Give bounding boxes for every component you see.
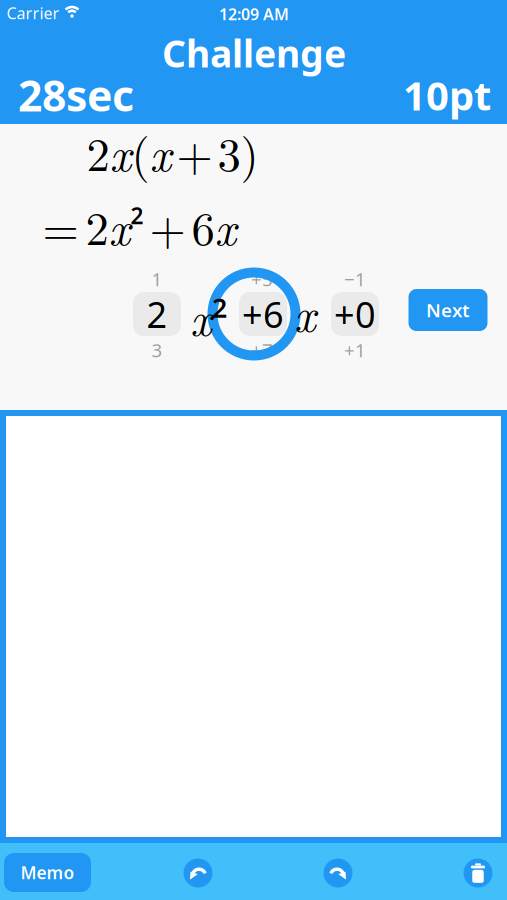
- staticText: +5: [251, 267, 273, 291]
- staticText: 2: [86, 118, 109, 184]
- staticText: 6: [191, 192, 214, 258]
- staticText: 2: [85, 192, 108, 258]
- staticText: Next: [426, 298, 470, 322]
- button[interactable]: +6: [239, 292, 287, 336]
- button[interactable]: Next: [408, 289, 487, 331]
- staticText: 3: [217, 118, 240, 184]
- staticText: Memo: [20, 861, 74, 884]
- staticText: +7: [251, 338, 273, 362]
- staticText: 12:09 AM: [219, 3, 289, 25]
- staticText: x: [294, 279, 316, 345]
- staticText: +0: [334, 290, 376, 338]
- staticText: +: [176, 118, 212, 184]
- staticText: x: [149, 118, 171, 184]
- staticText: Carrier: [6, 2, 59, 24]
- button[interactable]: 2: [133, 292, 181, 336]
- button[interactable]: Clear: [463, 858, 492, 887]
- staticText: 2: [212, 290, 227, 325]
- staticText: +: [149, 192, 185, 258]
- staticText: x: [108, 192, 130, 258]
- staticText: +1: [344, 338, 366, 362]
- staticText: =: [42, 192, 78, 258]
- staticText: Challenge: [162, 28, 346, 78]
- button[interactable]: Redo: [323, 858, 352, 887]
- staticText: 2: [146, 290, 167, 338]
- staticText: 1: [151, 267, 162, 291]
- staticText: +6: [242, 290, 284, 338]
- staticText: ): [240, 118, 258, 184]
- staticText: 3: [151, 338, 162, 362]
- staticText: x: [214, 192, 236, 258]
- staticText: 10pt: [403, 68, 491, 121]
- staticText: x: [109, 118, 131, 184]
- button[interactable]: Memo: [4, 853, 91, 892]
- staticText: −1: [344, 267, 366, 291]
- staticText: 2: [130, 200, 143, 230]
- staticText: (: [131, 118, 149, 184]
- button[interactable]: Undo: [183, 858, 212, 887]
- button[interactable]: +0: [331, 292, 379, 336]
- staticText: x: [190, 283, 212, 349]
- staticText: 28sec: [18, 67, 134, 123]
